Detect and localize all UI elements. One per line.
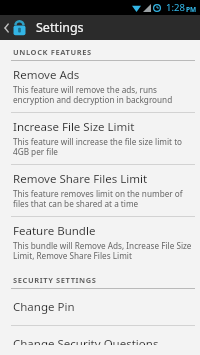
button[interactable]: Increase File Size Limit <box>0 113 200 164</box>
staticText: SECURITY SETTINGS <box>13 275 97 285</box>
staticText: This feature will remove the ads, runs e… <box>13 84 173 106</box>
staticText: Remove Ads <box>13 67 80 83</box>
staticText: Remove Share Files Limit <box>13 171 148 187</box>
button[interactable]: Navigate up <box>0 15 30 40</box>
staticText: This bundle will Remove Ads, Increase Fi… <box>13 240 192 262</box>
staticText: UNLOCK FEATURES <box>13 47 92 57</box>
button[interactable]: Feature Bundle <box>0 217 200 268</box>
staticText: Settings <box>36 19 84 36</box>
staticText: Increase File Size Limit <box>13 119 135 135</box>
staticText: This feature removes limit on the number… <box>13 188 183 210</box>
staticText: Change Security Questions <box>13 336 159 345</box>
button[interactable]: Change Security Questions <box>0 326 200 355</box>
staticText: Feature Bundle <box>13 223 96 239</box>
staticText: 1:28 <box>166 1 185 14</box>
button[interactable]: Remove Ads <box>0 61 200 112</box>
staticText: Change Pin <box>13 299 75 315</box>
button[interactable]: Change Pin <box>0 289 200 325</box>
staticText: This feature will increase the file size… <box>13 136 183 158</box>
staticText: PM <box>186 5 197 14</box>
button[interactable]: Remove Share Files Limit <box>0 165 200 216</box>
